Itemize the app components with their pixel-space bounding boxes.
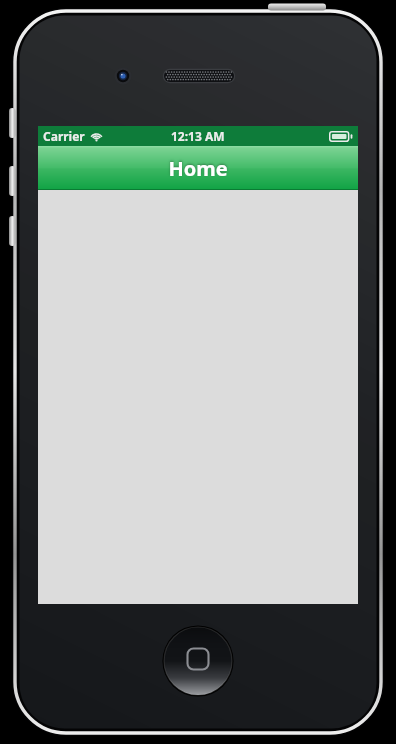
other: Wi-Fi signal bbox=[90, 131, 103, 142]
staticText: Home bbox=[168, 155, 228, 182]
other: Battery full bbox=[329, 131, 353, 142]
button[interactable]: Home bbox=[38, 146, 358, 190]
staticText: 12:13 AM bbox=[171, 128, 225, 144]
staticText: Carrier bbox=[43, 128, 85, 144]
